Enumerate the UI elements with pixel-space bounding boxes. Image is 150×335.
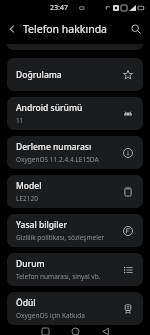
staticText: Telefon hakkında [23, 22, 107, 36]
button[interactable] [7, 44, 143, 50]
staticText: Durum [16, 258, 45, 270]
staticText: Ödül [16, 297, 36, 309]
staticText: Model [16, 180, 42, 192]
button[interactable]: Yasal bilgiler [7, 214, 143, 247]
button[interactable]: Recents [34, 328, 56, 335]
staticText: Android sürümü [16, 102, 83, 114]
button[interactable]: Derleme numarası [7, 136, 143, 169]
staticText: 11 [16, 116, 24, 125]
button[interactable]: Search [127, 20, 145, 38]
staticText: OxygenOS 11.2.4.4.LE15DA [16, 155, 99, 164]
button[interactable]: Ödül [7, 292, 143, 325]
staticText: Telefon numarası, sinyal vb. [16, 272, 101, 281]
staticText: Yasal bilgiler [16, 219, 68, 231]
button[interactable]: Back [3, 20, 21, 38]
button[interactable]: Doğrulama [7, 58, 143, 91]
button[interactable]: Android sürümü [7, 97, 143, 130]
button[interactable]: Model [7, 175, 143, 208]
staticText: Gizlilik politikası, sözleşmeler vb. [16, 233, 113, 242]
button[interactable]: Home [64, 328, 86, 335]
staticText: OxygenOS için Katkıda Bulunanlar [16, 311, 113, 320]
staticText: Doğrulama [16, 69, 62, 81]
button[interactable]: Durum [7, 253, 143, 286]
staticText: LE2120 [16, 194, 38, 203]
button[interactable]: Back [94, 328, 116, 335]
staticText: 23:47 [50, 3, 68, 13]
staticText: Derleme numarası [16, 141, 92, 153]
